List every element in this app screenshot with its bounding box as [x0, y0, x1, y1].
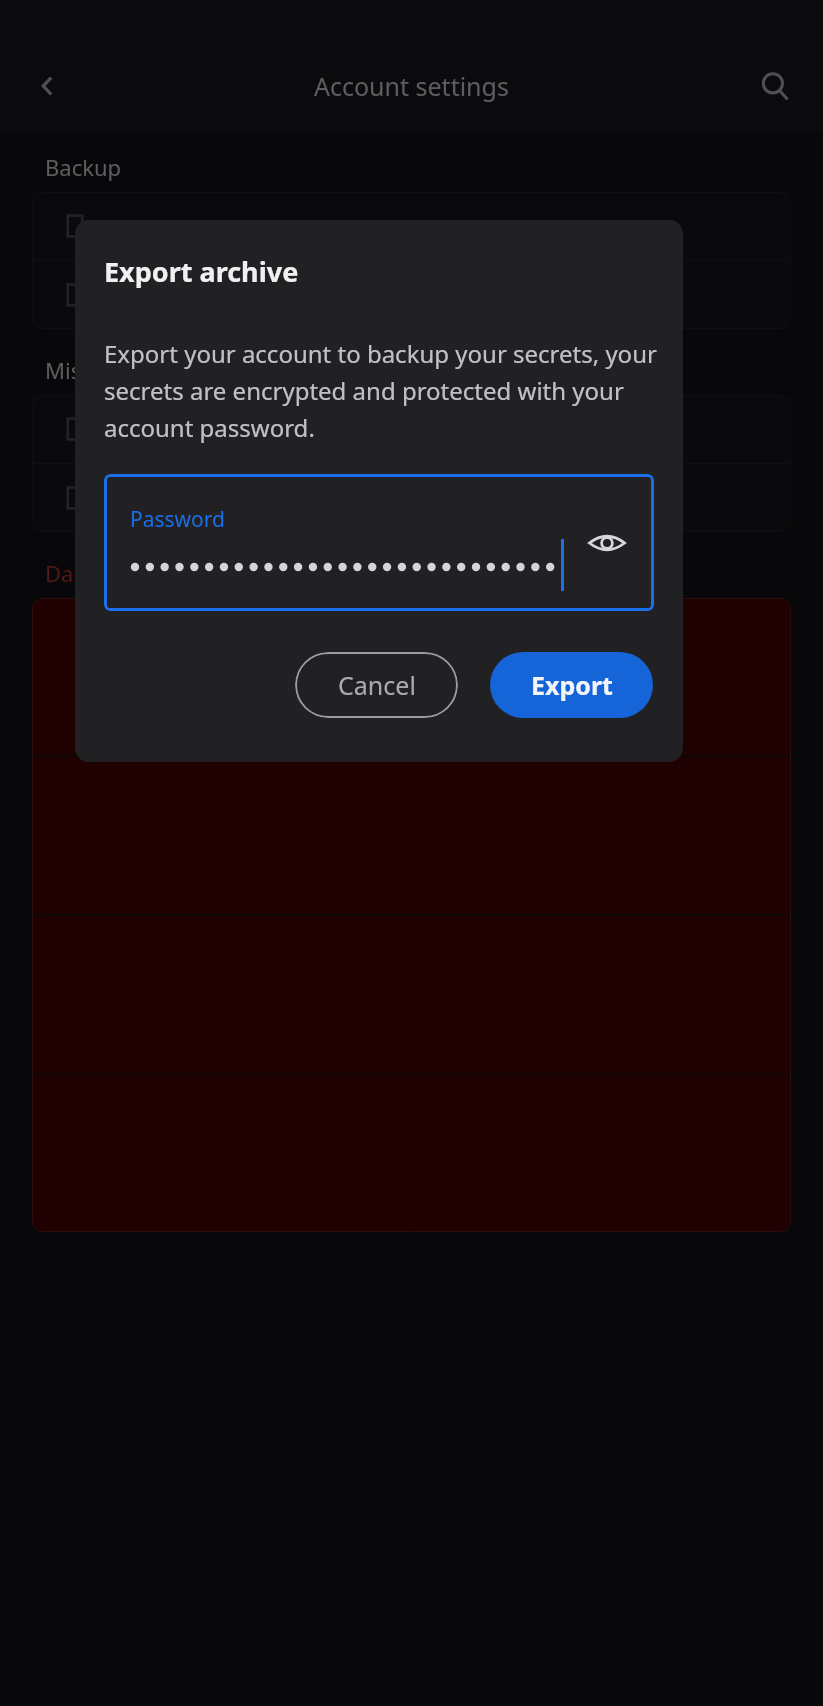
staticText: Change password	[137, 660, 348, 694]
button[interactable]	[32, 395, 791, 463]
button[interactable]: Password	[104, 474, 654, 611]
button[interactable]: Export	[490, 652, 653, 718]
staticText: Misc	[45, 355, 92, 385]
staticText: Cancel	[338, 668, 416, 702]
staticText: Danger zone	[45, 558, 178, 588]
staticText: Export archive	[104, 253, 299, 290]
staticText: Backup	[45, 152, 122, 182]
staticText: Password	[130, 505, 225, 534]
button[interactable]	[32, 261, 791, 329]
staticText: Export your account to backup your secre…	[104, 337, 663, 444]
button[interactable]	[32, 464, 791, 532]
button[interactable]: Back	[20, 58, 76, 114]
button[interactable]: Show password	[580, 516, 634, 570]
staticText: Export	[531, 668, 613, 702]
button[interactable]	[32, 757, 791, 914]
button[interactable]: Change password	[32, 598, 791, 755]
staticText: Account settings	[314, 69, 509, 103]
button[interactable]: Search	[747, 58, 803, 114]
button[interactable]	[32, 192, 791, 260]
button[interactable]: Cancel	[295, 652, 458, 718]
